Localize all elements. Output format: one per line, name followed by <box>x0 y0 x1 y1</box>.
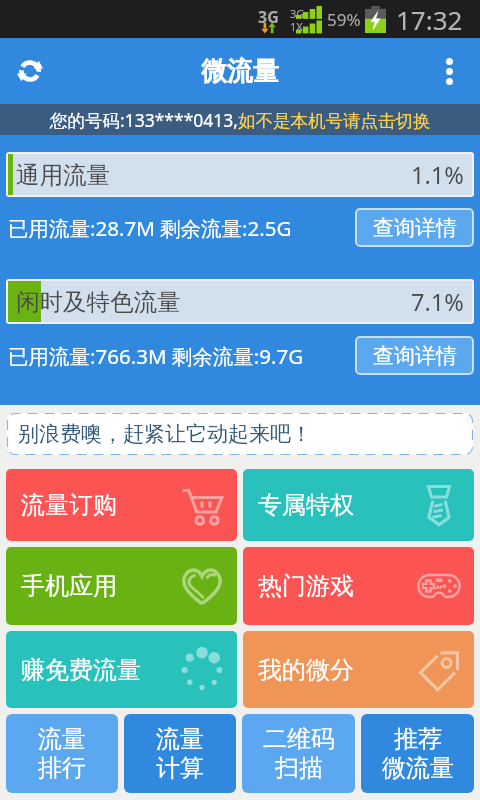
button[interactable]: 二维码 扫描 <box>242 714 355 793</box>
button[interactable]: 流量 排行 <box>6 714 118 793</box>
staticText: 别浪费噢，赶紧让它动起来吧！ <box>18 421 312 447</box>
staticText: 手机应用 <box>21 571 117 601</box>
staticText: 二维码 扫描 <box>263 724 335 783</box>
button[interactable]: 专属特权 <box>243 469 474 541</box>
staticText: 7.1% <box>411 286 464 318</box>
staticText: 3G <box>258 6 279 28</box>
button[interactable]: More options <box>424 46 474 96</box>
button[interactable]: 手机应用 <box>6 547 237 625</box>
staticText: 闲时及特色流量 <box>16 287 181 317</box>
staticText: 赚免费流量 <box>21 655 141 685</box>
staticText: 查询详情 <box>373 343 457 369</box>
staticText: 已用流量:766.3M 剩余流量:9.7G <box>8 342 355 370</box>
button[interactable]: 查询详情 <box>355 336 474 375</box>
staticText: 流量订购 <box>21 490 117 520</box>
button[interactable]: 我的微分 <box>243 631 474 708</box>
button[interactable]: 查询详情 <box>355 208 474 247</box>
staticText: 查询详情 <box>373 215 457 241</box>
staticText: 3G 1X <box>290 6 305 34</box>
staticText: 已用流量:28.7M 剩余流量:2.5G <box>8 214 355 242</box>
staticText: 1.1% <box>411 159 464 191</box>
button[interactable]: 流量 计算 <box>124 714 236 793</box>
button[interactable]: Refresh <box>5 46 55 96</box>
button[interactable]: 通用流量 <box>6 152 474 197</box>
button[interactable]: 别浪费噢，赶紧让它动起来吧！ <box>7 413 473 455</box>
staticText: 微流量 <box>201 55 279 88</box>
staticText: 您的号码:133****0413,如不是本机号请点击切换 <box>50 108 431 132</box>
staticText: 我的微分 <box>258 655 354 685</box>
staticText: 17:32 <box>396 2 463 37</box>
button[interactable]: 您的号码:133****0413,如不是本机号请点击切换 <box>0 104 480 135</box>
staticText: 流量 排行 <box>38 724 86 783</box>
button[interactable]: 流量订购 <box>6 469 237 541</box>
staticText: 专属特权 <box>258 490 354 520</box>
button[interactable]: 推荐 微流量 <box>361 714 474 793</box>
staticText: 推荐 微流量 <box>382 724 454 783</box>
button[interactable]: 赚免费流量 <box>6 631 237 708</box>
button[interactable]: 闲时及特色流量 <box>6 279 474 324</box>
button[interactable]: 热门游戏 <box>243 547 474 625</box>
staticText: 59% <box>327 8 361 31</box>
staticText: 流量 计算 <box>156 724 204 783</box>
staticText: 热门游戏 <box>258 571 354 601</box>
staticText: 通用流量 <box>16 160 110 190</box>
